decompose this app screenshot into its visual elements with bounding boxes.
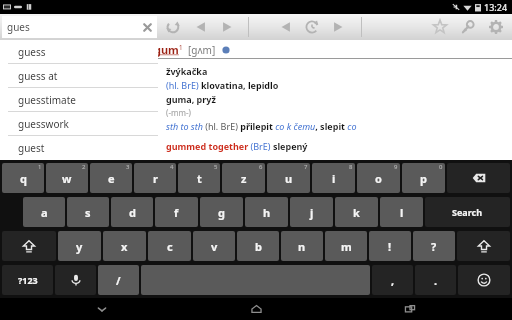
button[interactable]: d — [111, 197, 153, 227]
staticText: s — [85, 205, 91, 220]
staticText: žvýkačka — [166, 65, 208, 77]
button[interactable]: w — [46, 163, 88, 193]
staticText: w — [62, 171, 72, 186]
staticText: i — [332, 171, 336, 186]
staticText: 13:24 — [484, 1, 508, 13]
staticText: n — [298, 239, 306, 254]
button[interactable]: p — [402, 163, 445, 193]
button[interactable]: g — [200, 197, 243, 227]
button[interactable]: Search — [425, 197, 510, 227]
staticText: o — [375, 171, 382, 186]
button[interactable]: r — [134, 163, 176, 193]
staticText: ?123 — [18, 274, 38, 286]
staticText: 8 — [349, 163, 353, 171]
staticText: guess — [18, 45, 46, 59]
button[interactable]: Clear — [142, 22, 153, 33]
button[interactable]: Back — [190, 16, 212, 38]
staticText: f — [174, 205, 179, 220]
button[interactable]: b — [237, 231, 279, 261]
button[interactable]: o — [357, 163, 400, 193]
button[interactable]: History — [301, 16, 323, 38]
staticText: guess at — [18, 69, 58, 83]
button[interactable]: n — [281, 231, 323, 261]
button[interactable]: a — [23, 197, 65, 227]
button[interactable]: Search — [457, 16, 479, 38]
staticText: / — [116, 273, 121, 288]
button[interactable]: Forward — [216, 16, 238, 38]
button[interactable]: y — [58, 231, 101, 261]
staticText: p — [420, 171, 427, 186]
button[interactable]: Voice input — [55, 265, 96, 295]
staticText: guma, pryž — [166, 93, 216, 105]
staticText: r — [153, 171, 158, 186]
staticText: c — [167, 239, 173, 254]
button[interactable]: Favorites — [429, 16, 451, 38]
button[interactable]: guesstimate — [8, 88, 158, 112]
staticText: h — [263, 205, 271, 220]
staticText: j — [310, 205, 314, 220]
button[interactable]: m — [325, 231, 367, 261]
staticText: (hl. BrE) klovatina, lepidlo — [166, 79, 279, 91]
button[interactable]: guess at — [8, 64, 158, 88]
staticText: ? — [431, 239, 437, 254]
button[interactable]: x — [103, 231, 146, 261]
staticText: gummed together (BrE) slepený — [166, 140, 308, 152]
button[interactable]: guesswork — [8, 112, 158, 136]
button[interactable]: Next entry — [327, 16, 349, 38]
button[interactable]: h — [245, 197, 288, 227]
button[interactable]: f — [155, 197, 198, 227]
staticText: sth to sth (hl. BrE) přilepit co k čemu,… — [166, 120, 357, 132]
button[interactable]: / — [98, 265, 139, 295]
staticText: z — [241, 171, 247, 186]
staticText: 2 — [82, 163, 86, 171]
button[interactable]: Settings — [485, 16, 507, 38]
staticText: 4 — [170, 163, 174, 171]
button[interactable]: Emoji — [458, 265, 510, 295]
button[interactable]: ! — [369, 231, 411, 261]
button[interactable]: v — [193, 231, 235, 261]
staticText: l — [400, 205, 404, 220]
staticText: 3 — [126, 163, 130, 171]
staticText: 1 — [38, 163, 42, 171]
button[interactable]: Hide keyboard — [85, 298, 119, 320]
staticText: q — [20, 171, 27, 186]
button[interactable]: i — [312, 163, 355, 193]
button[interactable]: Shift — [2, 231, 56, 261]
button[interactable]: t — [178, 163, 220, 193]
staticText: k — [353, 205, 360, 220]
staticText: b — [255, 239, 262, 254]
button[interactable]: , — [372, 265, 413, 295]
button[interactable]: Backspace — [447, 163, 510, 193]
staticText: . — [434, 273, 438, 288]
button[interactable]: Recents — [393, 298, 427, 320]
button[interactable]: u — [267, 163, 310, 193]
button[interactable]: j — [290, 197, 333, 227]
staticText: Search — [452, 206, 483, 218]
button[interactable]: l — [380, 197, 423, 227]
button[interactable]: s — [67, 197, 109, 227]
button[interactable]: guest — [8, 136, 158, 160]
staticText: d — [129, 205, 136, 220]
button[interactable]: Home — [239, 298, 273, 320]
button[interactable]: guess — [8, 40, 158, 64]
button[interactable]: ? — [413, 231, 455, 261]
staticText: guesstimate — [18, 93, 76, 107]
button[interactable]: Shift — [457, 231, 510, 261]
button[interactable]: Reload — [162, 16, 184, 38]
staticText: 0 — [439, 163, 443, 171]
button[interactable]: z — [222, 163, 265, 193]
button[interactable]: Previous entry — [275, 16, 297, 38]
button[interactable]: gues — [2, 16, 157, 38]
staticText: gum1 [gʌm] — [154, 42, 216, 57]
button[interactable]: ?123 — [2, 265, 53, 295]
button[interactable]: c — [148, 231, 191, 261]
button[interactable]: Pronounce — [222, 46, 230, 54]
button[interactable]: k — [335, 197, 378, 227]
button[interactable]: q — [2, 163, 44, 193]
button[interactable]: . — [415, 265, 456, 295]
button[interactable]: e — [90, 163, 132, 193]
staticText: , — [391, 273, 395, 288]
staticText: guesswork — [18, 117, 69, 131]
staticText: ! — [388, 239, 392, 254]
